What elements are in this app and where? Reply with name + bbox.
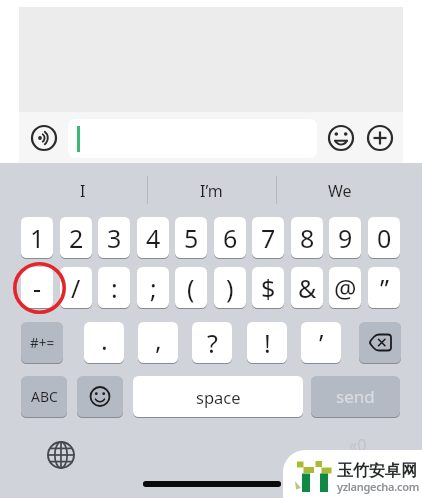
staticText: & [298,271,317,305]
staticText: send [336,385,375,408]
staticText: 8 [300,221,315,255]
staticText: 4 [146,221,161,255]
button[interactable]: We [276,172,403,210]
button[interactable] [359,322,401,363]
staticText: . [101,323,108,357]
button[interactable]: & [291,267,323,308]
button[interactable]: 2 [60,217,92,258]
button[interactable]: : [98,267,130,308]
staticText: @ [334,271,357,305]
button[interactable]: ( [175,267,207,308]
staticText: : [111,271,118,305]
button[interactable]: ’ [301,322,341,363]
button[interactable]: - [21,267,53,308]
staticText: , [155,323,162,357]
button[interactable] [77,376,123,417]
button[interactable]: space [133,376,303,417]
button[interactable] [40,434,82,476]
button[interactable]: 8 [291,217,323,258]
button[interactable]: $ [252,267,284,308]
button[interactable]: 4 [137,217,169,258]
button[interactable]: I’m [147,172,276,210]
button[interactable]: I [19,172,147,210]
button[interactable]: ! [247,322,287,363]
button[interactable]: 7 [252,217,284,258]
staticText: 5 [184,221,199,255]
staticText: «0 [349,434,367,456]
staticText: 3 [107,221,122,255]
staticText: ) [226,271,234,305]
staticText: 玉竹安卓网 [337,461,417,481]
staticText: I [80,180,86,202]
staticText: 1 [30,221,45,255]
staticText: We [328,180,352,202]
button[interactable] [28,122,60,154]
button[interactable]: ? [192,322,232,363]
button[interactable]: , [138,322,178,363]
staticText: 9 [338,221,353,255]
button[interactable]: . [84,322,124,363]
staticText: / [71,271,81,305]
button[interactable] [68,119,317,158]
staticText: ” [380,271,389,305]
staticText: #+= [30,334,55,352]
button[interactable]: ) [214,267,246,308]
staticText: 6 [223,221,238,255]
button[interactable] [364,122,396,154]
button[interactable] [325,122,357,154]
staticText: - [33,271,42,305]
staticText: I’m [200,180,223,202]
staticText: ’ [319,326,324,360]
button[interactable]: 6 [214,217,246,258]
staticText: ( [187,271,195,305]
button[interactable]: / [60,267,92,308]
button[interactable]: #+= [21,322,63,363]
button[interactable]: 1 [21,217,53,258]
button[interactable]: ; [137,267,169,308]
staticText: ; [150,271,157,305]
button[interactable]: 0 [368,217,400,258]
button[interactable]: ” [368,267,400,308]
button[interactable]: @ [329,267,361,308]
button[interactable]: ABC [21,376,67,417]
button[interactable]: 5 [175,217,207,258]
button[interactable]: 9 [329,217,361,258]
staticText: ABC [31,387,58,406]
staticText: yzlangecha.com [337,479,419,494]
staticText: space [196,386,241,408]
staticText: 0 [377,221,392,255]
staticText: ? [207,326,218,360]
button[interactable]: send [311,376,400,417]
staticText: ! [264,326,271,360]
staticText: $ [261,271,276,305]
button[interactable]: 3 [98,217,130,258]
staticText: 2 [69,221,84,255]
staticText: 7 [261,221,276,255]
